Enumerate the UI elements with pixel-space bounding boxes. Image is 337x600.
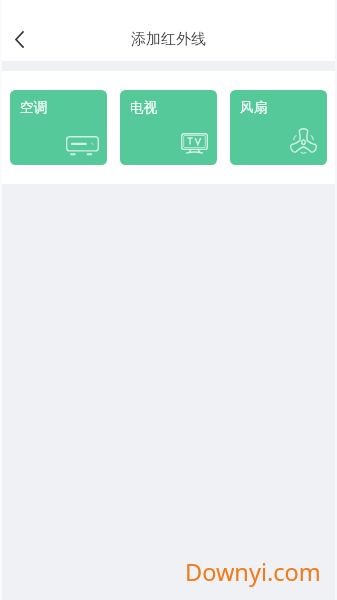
button[interactable]: 风扇 xyxy=(230,90,327,165)
button[interactable]: 空调 xyxy=(10,90,107,165)
staticText: Downyi.com xyxy=(185,556,321,588)
staticText: 风扇 xyxy=(240,99,268,116)
button[interactable]: 电视 xyxy=(120,90,217,165)
button[interactable]: Back xyxy=(0,19,40,59)
staticText: 添加红外线 xyxy=(131,30,206,49)
staticText: 电视 xyxy=(130,99,158,116)
staticText: 空调 xyxy=(20,99,48,116)
